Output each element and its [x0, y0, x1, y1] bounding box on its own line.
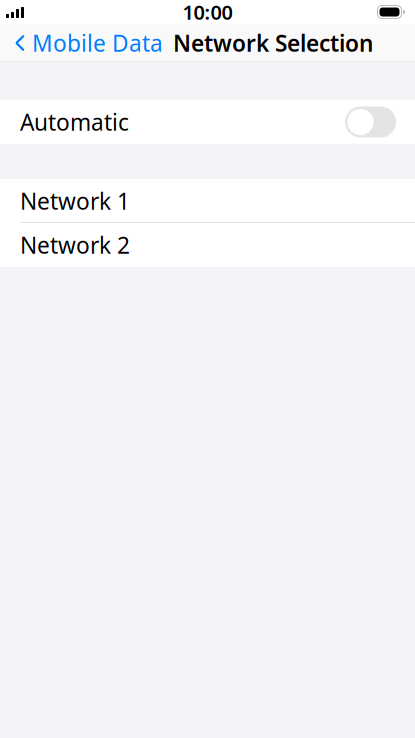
staticText: Network Selection — [173, 28, 373, 58]
staticText: Network 1 — [20, 186, 130, 216]
button[interactable]: Network 1 — [0, 179, 415, 223]
button[interactable]: Automatic — [0, 100, 415, 144]
button[interactable]: Network 2 — [0, 223, 415, 267]
staticText: Automatic — [20, 107, 129, 137]
staticText: Mobile Data — [32, 28, 163, 58]
staticText: 10:00 — [182, 0, 232, 25]
staticText: Network 2 — [20, 230, 130, 260]
button[interactable]: Back to Mobile Data — [0, 24, 169, 62]
